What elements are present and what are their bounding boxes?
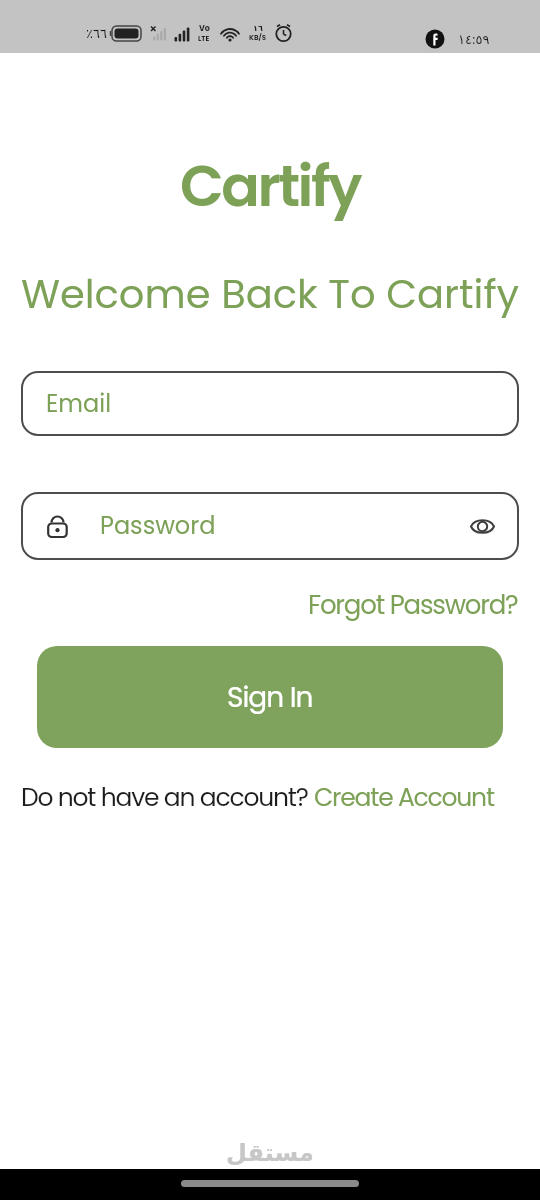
- staticText: Do not have an account?: [21, 780, 314, 815]
- button[interactable]: Email: [21, 371, 519, 436]
- staticText: KB/S: [249, 33, 266, 43]
- staticText: مستقل: [226, 1139, 314, 1167]
- staticText: ١٦: [253, 24, 263, 33]
- button[interactable]: Sign In: [37, 646, 503, 748]
- button[interactable]: Password: [21, 492, 519, 560]
- staticText: LTE: [198, 34, 210, 44]
- staticText: ١٤:٥٩: [458, 30, 490, 48]
- staticText: Vo: [199, 23, 210, 34]
- button[interactable]: [470, 517, 495, 536]
- staticText: ٪٦٦: [86, 26, 107, 41]
- button[interactable]: Forgot Password?: [308, 587, 518, 623]
- staticText: Create Account: [314, 780, 494, 815]
- staticText: Password: [100, 509, 216, 543]
- staticText: mostaql.com: [225, 1167, 315, 1185]
- staticText: Welcome Back To Cartify: [0, 266, 540, 322]
- staticText: Cartify: [0, 146, 540, 226]
- button[interactable]: Create Account: [314, 780, 494, 815]
- staticText: Sign In: [227, 678, 313, 717]
- staticText: Forgot Password?: [308, 587, 518, 623]
- staticText: Email: [46, 387, 112, 421]
